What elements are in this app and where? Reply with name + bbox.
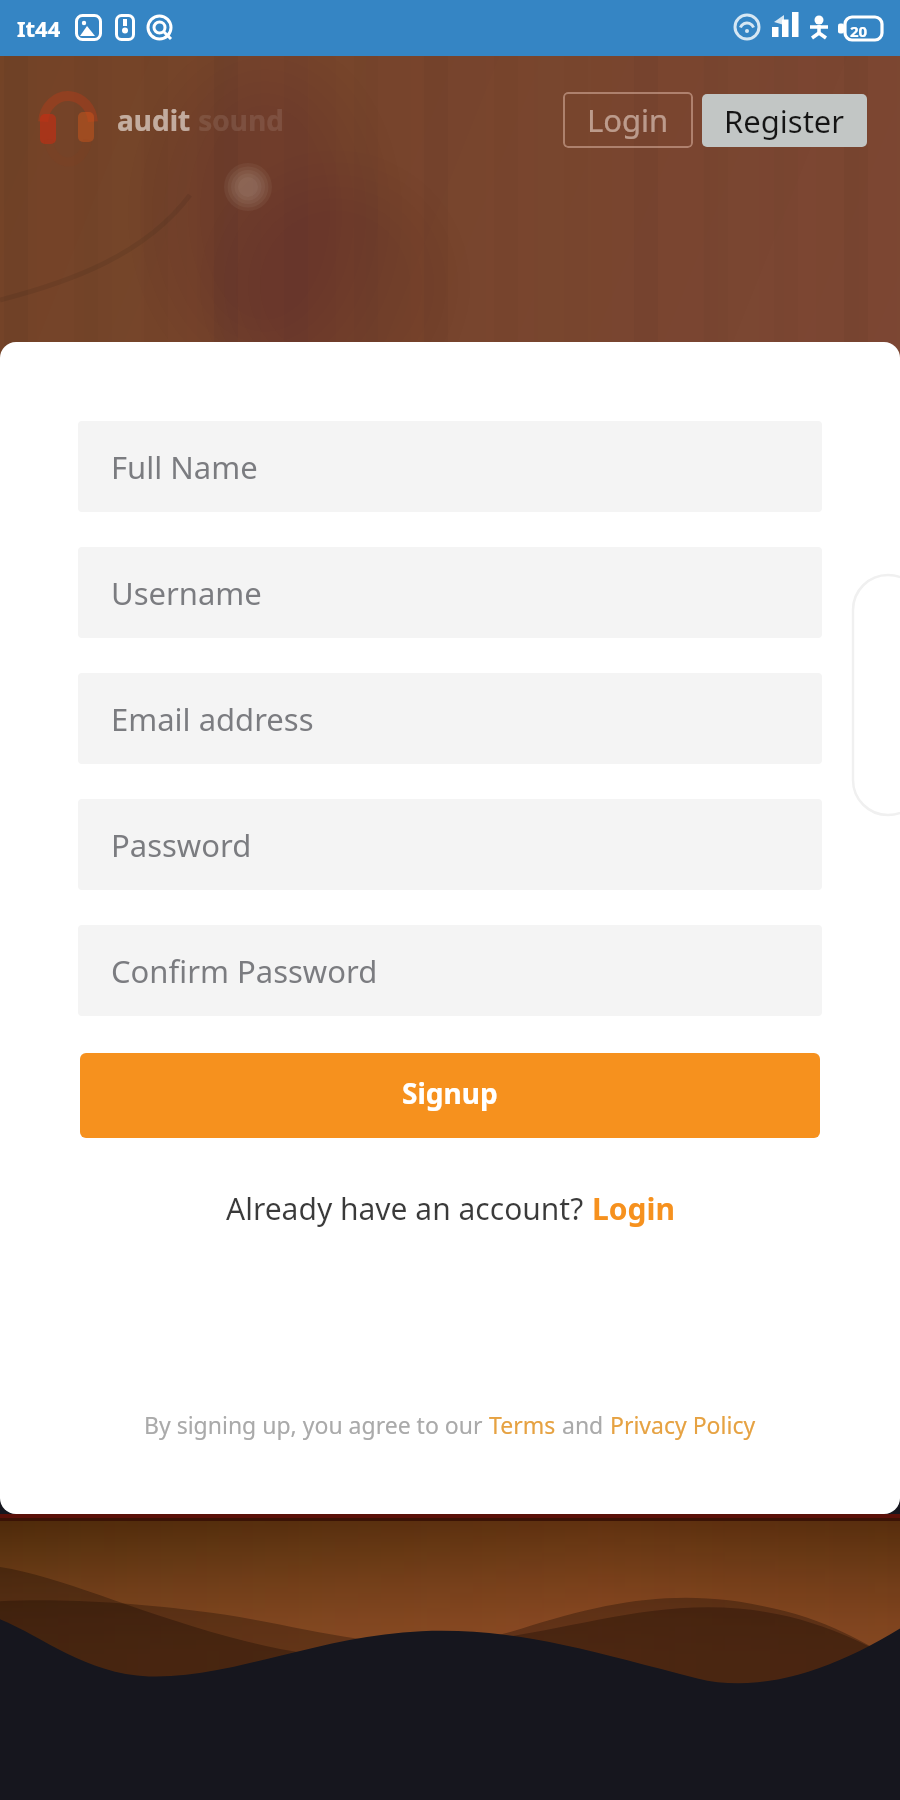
staticText: and [556, 1409, 610, 1440]
staticText: 20 [850, 21, 868, 41]
staticText: Login [587, 99, 669, 141]
button[interactable]: Login [563, 92, 693, 148]
staticText: By signing up, you agree to our [144, 1409, 489, 1440]
staticText: Register [724, 100, 845, 142]
other: App logo [38, 92, 98, 148]
staticText: It44 [17, 13, 61, 43]
button[interactable]: Username [78, 547, 822, 638]
staticText: Password [111, 824, 252, 866]
button[interactable]: Signup [80, 1053, 820, 1138]
button[interactable]: Full Name [78, 421, 822, 512]
staticText: Signup [402, 1074, 498, 1112]
staticText: Username [111, 572, 262, 614]
button[interactable]: Register [702, 94, 867, 147]
staticText: Already have an account? [226, 1188, 592, 1229]
staticText: Email address [111, 698, 314, 740]
staticText: Confirm Password [111, 950, 378, 992]
staticText: Full Name [111, 446, 258, 488]
staticText: sound [191, 101, 284, 139]
staticText: Login [592, 1188, 675, 1229]
button[interactable]: Terms [489, 1409, 556, 1440]
staticText: audit [117, 101, 191, 139]
button[interactable]: Privacy Policy [610, 1409, 756, 1440]
button[interactable]: Email address [78, 673, 822, 764]
button[interactable]: Login [592, 1188, 675, 1229]
button[interactable]: Confirm Password [78, 925, 822, 1016]
button[interactable]: Password [78, 799, 822, 890]
